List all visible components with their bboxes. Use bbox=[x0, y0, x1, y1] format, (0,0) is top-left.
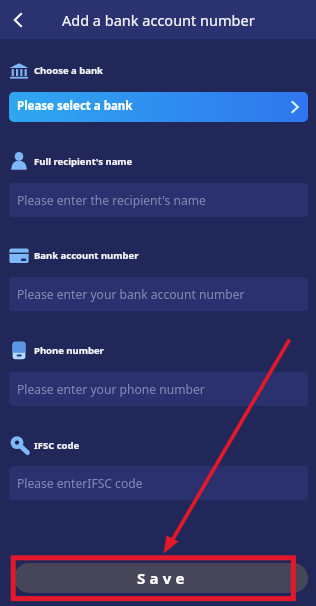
button[interactable]: Save bbox=[14, 563, 308, 593]
staticText: Please select a bank bbox=[17, 98, 133, 114]
staticText: Please enter your bank account number bbox=[17, 286, 245, 302]
staticText: Phone number bbox=[34, 344, 104, 357]
button[interactable]: Please select a bank bbox=[9, 92, 308, 122]
staticText: Full recipient's name bbox=[34, 155, 133, 168]
staticText: Choose a bank bbox=[34, 64, 103, 77]
button[interactable]: Please enterIFSC code bbox=[9, 466, 308, 500]
staticText: Add a bank account number bbox=[62, 10, 255, 30]
button[interactable]: Please enter your bank account number bbox=[9, 277, 308, 311]
staticText: Bank account number bbox=[34, 249, 139, 262]
button[interactable]: Please enter your phone number bbox=[9, 372, 308, 406]
staticText: Save bbox=[137, 568, 189, 588]
staticText: Please enter the recipient's name bbox=[17, 192, 206, 208]
button[interactable]: Please enter the recipient's name bbox=[9, 183, 308, 217]
button[interactable]: Back bbox=[3, 5, 33, 35]
staticText: Please enterIFSC code bbox=[17, 475, 143, 491]
staticText: IFSC code bbox=[34, 439, 80, 452]
staticText: Please enter your phone number bbox=[17, 381, 205, 397]
